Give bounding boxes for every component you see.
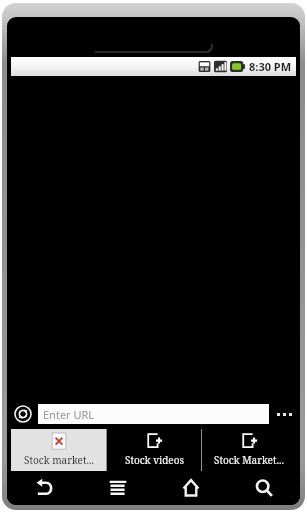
staticText: Stock videos: [125, 453, 184, 467]
staticText: 8:30 PM: [249, 59, 292, 74]
staticText: Enter URL: [43, 407, 95, 422]
button[interactable]: Enter URL: [38, 404, 269, 424]
button[interactable]: Stock market...: [11, 429, 106, 471]
staticText: Stock market...: [24, 453, 94, 467]
button[interactable]: Back: [7, 471, 81, 505]
button[interactable]: More options: [272, 402, 296, 426]
button[interactable]: Home: [154, 471, 227, 505]
button[interactable]: Search: [227, 471, 300, 505]
button[interactable]: Menu: [81, 471, 154, 505]
staticText: Stock Market...: [214, 453, 284, 467]
button[interactable]: Stock videos: [107, 429, 201, 471]
button[interactable]: Refresh: [11, 402, 35, 426]
button[interactable]: Stock Market...: [202, 429, 296, 471]
